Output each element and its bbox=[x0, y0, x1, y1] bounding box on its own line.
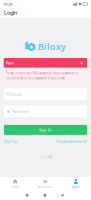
staticText: Login bbox=[4, 9, 17, 16]
button[interactable]: Announce bbox=[30, 177, 61, 190]
staticText: 10:24 bbox=[3, 1, 12, 7]
staticText: Forgot password? bbox=[56, 138, 87, 144]
button[interactable]: Sign Up bbox=[4, 138, 17, 144]
button[interactable]: Home bbox=[0, 177, 30, 190]
staticText: Password bbox=[11, 108, 28, 114]
button[interactable]: Login bbox=[61, 177, 91, 190]
button[interactable]: Sign In bbox=[4, 125, 87, 135]
staticText: not identical to the password of your em… bbox=[6, 76, 66, 80]
button[interactable]: Email bbox=[4, 88, 87, 100]
staticText: Home bbox=[11, 185, 19, 188]
staticText: Tips bbox=[6, 60, 14, 65]
button[interactable]: Recents bbox=[22, 190, 31, 200]
staticText: Announce bbox=[38, 185, 53, 188]
staticText: Please ensure your Biloxy account Login … bbox=[6, 71, 78, 75]
staticText: Sign Up bbox=[4, 138, 17, 144]
button[interactable]: Password bbox=[4, 105, 87, 117]
button[interactable]: Back bbox=[57, 190, 66, 200]
staticText: Biloxy bbox=[38, 40, 66, 53]
staticText: v 1.1.08 bbox=[39, 154, 52, 159]
button[interactable]: Home bbox=[40, 190, 49, 200]
button[interactable]: Dismiss tip bbox=[78, 58, 86, 68]
staticText: Login bbox=[72, 185, 80, 188]
staticText: Sign In bbox=[39, 127, 52, 132]
staticText: Email bbox=[11, 91, 21, 97]
button[interactable]: Forgot password? bbox=[56, 138, 87, 144]
